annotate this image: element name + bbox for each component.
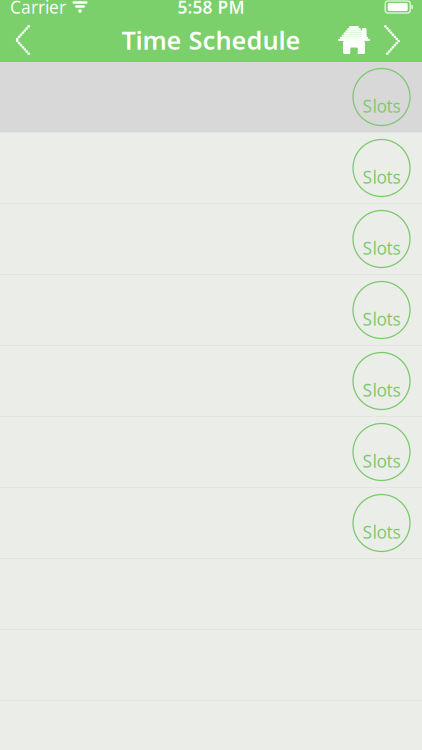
button[interactable]: Forward bbox=[376, 18, 416, 62]
staticText: Slots bbox=[362, 94, 400, 117]
button[interactable]: Slots bbox=[0, 488, 422, 559]
staticText: Time Schedule bbox=[121, 23, 300, 57]
button[interactable]: Slots bbox=[0, 204, 422, 275]
staticText: Carrier bbox=[10, 0, 66, 18]
button[interactable]: Slots bbox=[0, 133, 422, 204]
staticText: Slots bbox=[362, 520, 400, 543]
button[interactable]: Home bbox=[332, 18, 376, 62]
staticText: Slots bbox=[362, 449, 400, 472]
staticText: Slots bbox=[362, 378, 400, 401]
button[interactable]: Slots bbox=[0, 275, 422, 346]
button[interactable]: Back bbox=[4, 18, 48, 62]
button[interactable]: Slots bbox=[0, 417, 422, 488]
staticText: Slots bbox=[362, 236, 400, 259]
staticText: Slots bbox=[362, 165, 400, 188]
staticText: 5:58 PM bbox=[177, 0, 244, 18]
button[interactable]: Slots bbox=[0, 62, 422, 133]
staticText: Slots bbox=[362, 307, 400, 330]
button[interactable]: Slots bbox=[0, 346, 422, 417]
